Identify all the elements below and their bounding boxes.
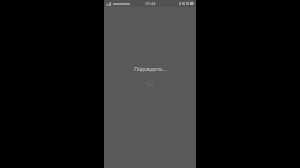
staticText: Подождите... (134, 66, 166, 73)
staticText: 07:44 (145, 1, 156, 6)
button[interactable]: Loading (147, 80, 153, 86)
